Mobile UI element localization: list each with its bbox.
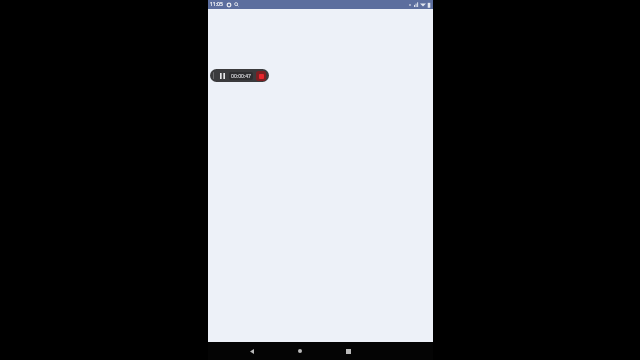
button[interactable]: Pause recording [217, 70, 227, 81]
button[interactable]: 00:00:47 [229, 72, 253, 80]
button[interactable]: Back [244, 343, 260, 359]
button[interactable]: Recent apps [340, 343, 356, 359]
button[interactable]: Move recorder [212, 69, 215, 82]
button[interactable]: Move recorder [210, 69, 269, 82]
staticText: 11:05 [210, 1, 223, 8]
button[interactable]: Stop recording [256, 71, 266, 81]
button[interactable]: Home [292, 343, 308, 359]
staticText: 00:00:47 [231, 73, 251, 80]
